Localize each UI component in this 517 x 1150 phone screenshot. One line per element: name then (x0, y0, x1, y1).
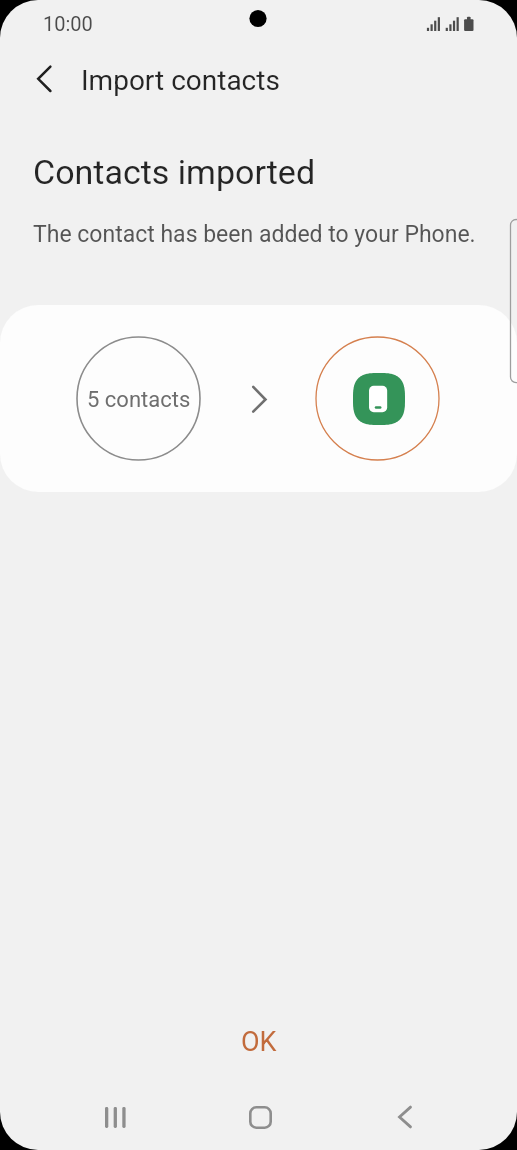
staticText: 5 contacts (87, 387, 191, 413)
button[interactable]: Recent apps (87, 1089, 143, 1145)
staticText: 10:00 (43, 12, 93, 35)
button[interactable]: Back (377, 1089, 433, 1145)
staticText: The contact has been added to your Phone… (33, 221, 476, 248)
staticText: Import contacts (81, 64, 280, 97)
staticText: Contacts imported (33, 152, 316, 192)
button[interactable]: OK (213, 1016, 305, 1068)
button[interactable]: Home (232, 1089, 288, 1145)
button[interactable]: Navigate up (17, 55, 63, 101)
staticText: OK (241, 1026, 277, 1058)
button[interactable]: 5 contacts (0, 305, 517, 492)
